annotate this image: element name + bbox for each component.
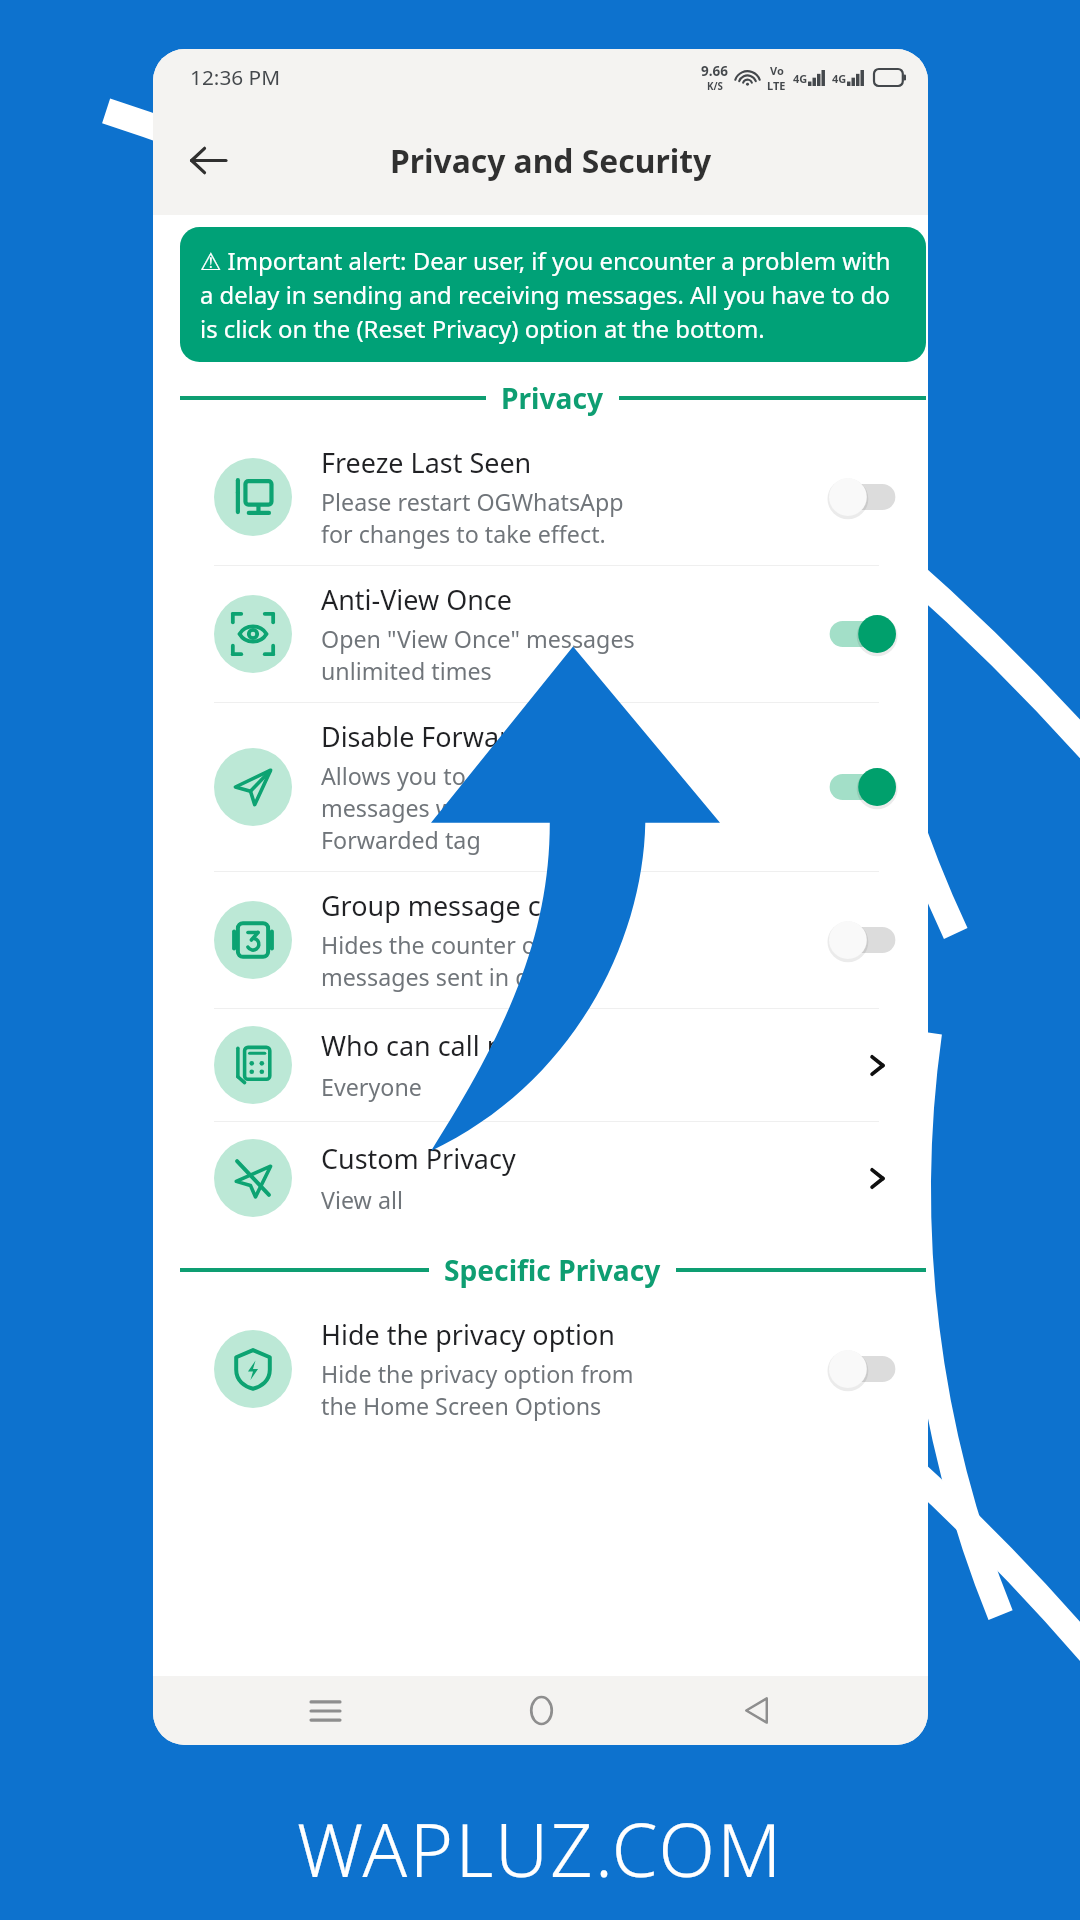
- button[interactable]: Anti-View Once: [153, 566, 928, 702]
- staticText: WAPLUZ.COM: [297, 1798, 784, 1898]
- staticText: Freeze Last Seen: [321, 444, 532, 481]
- button[interactable]: Custom Privacy: [153, 1122, 928, 1234]
- button[interactable]: Freeze Last Seen: [153, 429, 928, 565]
- staticText: 12:36 PM: [190, 63, 281, 91]
- button[interactable]: Group message counter: [153, 872, 928, 1008]
- staticText: K/S: [707, 80, 723, 93]
- staticText: Specific Privacy: [444, 1251, 661, 1289]
- button[interactable]: Hide the privacy option: [153, 1301, 928, 1437]
- button[interactable]: Back: [173, 126, 242, 195]
- button[interactable]: [826, 1348, 899, 1390]
- staticText: Custom Privacy: [321, 1140, 516, 1177]
- staticText: 4G: [832, 71, 847, 86]
- staticText: Please restart OGWhatsApp for changes to…: [321, 486, 624, 550]
- staticText: ⚠️ Important alert: Dear user, if you en…: [200, 244, 906, 345]
- button[interactable]: Who can call me?: [153, 1009, 928, 1121]
- staticText: Hides the counter of messages sent in gr…: [321, 929, 593, 993]
- button[interactable]: [826, 613, 899, 655]
- staticText: Hide the privacy option: [321, 1316, 615, 1353]
- staticText: 9.66: [701, 62, 728, 80]
- staticText: Privacy and Security: [390, 139, 712, 182]
- button[interactable]: [826, 476, 899, 518]
- button[interactable]: Back: [713, 1676, 799, 1745]
- staticText: Anti-View Once: [321, 581, 512, 618]
- button[interactable]: Home: [498, 1676, 584, 1745]
- staticText: Privacy: [501, 379, 604, 417]
- button[interactable]: [826, 766, 899, 808]
- staticText: Group message counter: [321, 887, 627, 924]
- staticText: Hide the privacy option from the Home Sc…: [321, 1358, 634, 1422]
- staticText: Who can call me?: [321, 1027, 539, 1064]
- button[interactable]: Disable Forwarded: [153, 703, 928, 871]
- staticText: Everyone: [321, 1071, 422, 1103]
- staticText: Open "View Once" messages unlimited time…: [321, 623, 635, 687]
- staticText: Disable Forwarded: [321, 718, 558, 755]
- staticText: View all: [321, 1184, 403, 1216]
- button[interactable]: [826, 919, 899, 961]
- staticText: Allows you to re-send messages without F…: [321, 760, 555, 856]
- staticText: Vo: [770, 63, 784, 78]
- button[interactable]: Recent apps: [282, 1676, 368, 1745]
- staticText: 4G: [793, 71, 808, 86]
- staticText: LTE: [767, 78, 786, 93]
